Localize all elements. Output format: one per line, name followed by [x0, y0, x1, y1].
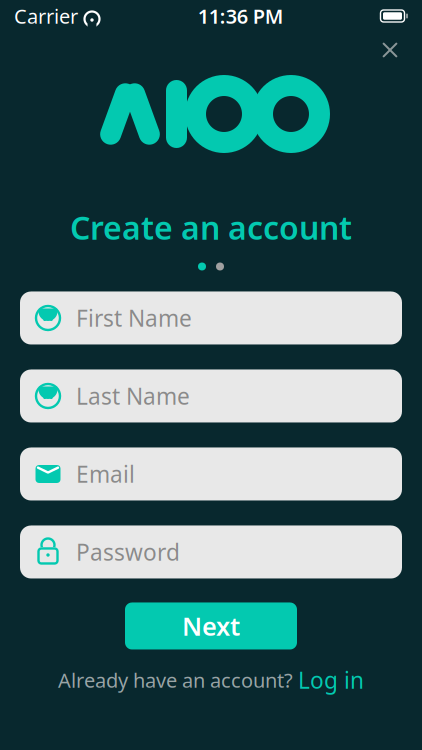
button[interactable]: Already have an account?	[58, 665, 364, 695]
staticText: Next	[182, 609, 240, 643]
staticText: First Name	[76, 303, 192, 333]
button[interactable]: Close	[370, 30, 410, 70]
staticText: 11:36 PM	[198, 3, 284, 29]
staticText: Carrier	[14, 3, 78, 29]
staticText: Last Name	[76, 381, 190, 411]
button[interactable]: Password	[20, 525, 402, 578]
staticText: Password	[76, 537, 180, 567]
button[interactable]: First Name	[20, 291, 402, 344]
button[interactable]: Last Name	[20, 369, 402, 422]
button[interactable]: Next	[125, 602, 297, 649]
button[interactable]: Email	[20, 447, 402, 500]
staticText: Already have an account?	[58, 667, 293, 693]
staticText: Create an account	[70, 206, 352, 248]
staticText: Email	[76, 459, 135, 489]
staticText: Log in	[298, 665, 364, 695]
